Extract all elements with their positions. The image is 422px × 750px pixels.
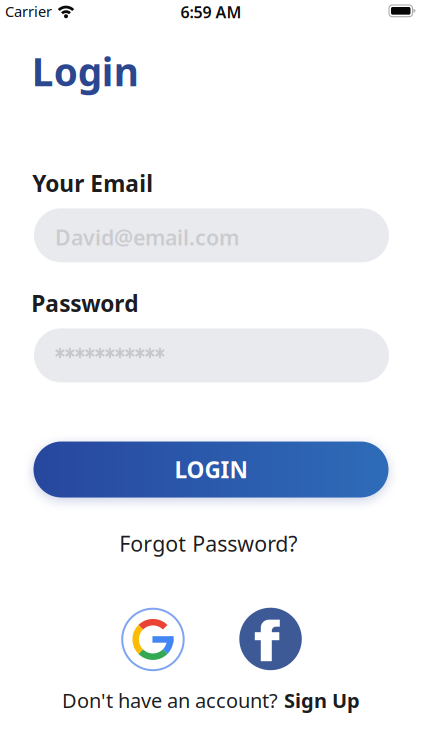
staticText: Sign Up: [284, 687, 360, 714]
textField[interactable]: David@email.com: [34, 208, 389, 262]
staticText: Login: [32, 45, 139, 97]
staticText: Don't have an account?: [62, 687, 278, 714]
staticText: Password: [31, 288, 138, 318]
staticText: Carrier: [5, 1, 52, 21]
button[interactable]: Forgot Password?: [119, 529, 297, 558]
button[interactable]: Sign in with Google: [122, 609, 184, 670]
button[interactable]: Sign Up: [284, 687, 360, 714]
staticText: Your Email: [32, 168, 153, 198]
staticText: 6:59 AM: [180, 1, 241, 23]
staticText: David@email.com: [55, 223, 239, 251]
button[interactable]: LOGIN: [33, 441, 388, 497]
secureTextField[interactable]: Password: [34, 328, 389, 382]
staticText: Forgot Password?: [119, 529, 297, 558]
staticText: LOGIN: [174, 454, 247, 484]
button[interactable]: Sign in with Facebook: [240, 609, 302, 670]
